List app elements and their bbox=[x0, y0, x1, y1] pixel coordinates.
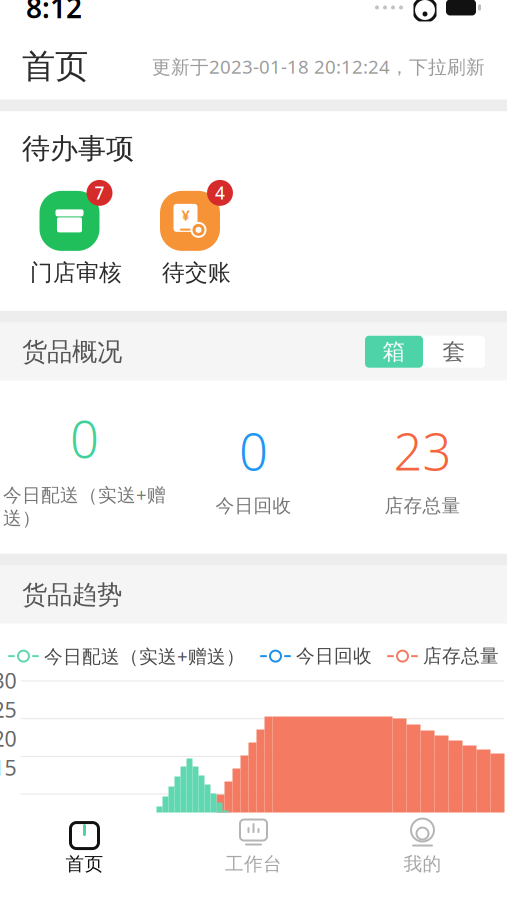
staticText: 今日回收 bbox=[215, 494, 291, 517]
staticText: 今日配送（实送+赠送） bbox=[3, 482, 166, 530]
staticText: 23 bbox=[393, 417, 451, 484]
staticText: 工作台 bbox=[225, 852, 282, 875]
button[interactable]: 工作台 bbox=[169, 817, 338, 875]
button[interactable]: ¥ bbox=[160, 180, 233, 287]
staticText: 货品趋势 bbox=[22, 579, 122, 610]
button[interactable]: 箱 bbox=[365, 336, 423, 368]
staticText: 25 bbox=[0, 695, 16, 724]
button[interactable]: 我的 bbox=[338, 817, 507, 875]
staticText: 4 bbox=[215, 181, 225, 204]
staticText: 套 bbox=[442, 338, 465, 366]
staticText: 0 bbox=[239, 417, 268, 484]
staticText: 首页 bbox=[65, 852, 103, 875]
staticText: 货品概况 bbox=[22, 336, 122, 367]
staticText: 首页 bbox=[22, 46, 88, 87]
staticText: 箱 bbox=[382, 338, 405, 366]
staticText: 7 bbox=[94, 181, 104, 204]
staticText: 15 bbox=[0, 753, 16, 782]
staticText: 今日回收 bbox=[296, 645, 372, 668]
staticText: 门店审核 bbox=[30, 259, 122, 287]
staticText: 待办事项 bbox=[22, 131, 134, 166]
staticText: 20 bbox=[0, 724, 16, 753]
staticText: ¥ bbox=[181, 205, 189, 225]
staticText: 30 bbox=[0, 666, 16, 695]
button[interactable]: 7 bbox=[30, 180, 122, 287]
button[interactable]: 套 bbox=[423, 336, 485, 368]
staticText: 店存总量 bbox=[384, 494, 460, 517]
staticText: 店存总量 bbox=[423, 645, 499, 668]
button[interactable]: 首页 bbox=[0, 817, 169, 875]
staticText: 今日配送（实送+赠送） bbox=[44, 644, 245, 668]
staticText: 我的 bbox=[403, 852, 441, 875]
staticText: 待交账 bbox=[162, 259, 231, 287]
staticText: 0 bbox=[70, 405, 99, 472]
staticText: 更新于2023-01-18 20:12:24，下拉刷新 bbox=[152, 54, 485, 79]
staticText: 8:12 bbox=[26, 0, 82, 26]
